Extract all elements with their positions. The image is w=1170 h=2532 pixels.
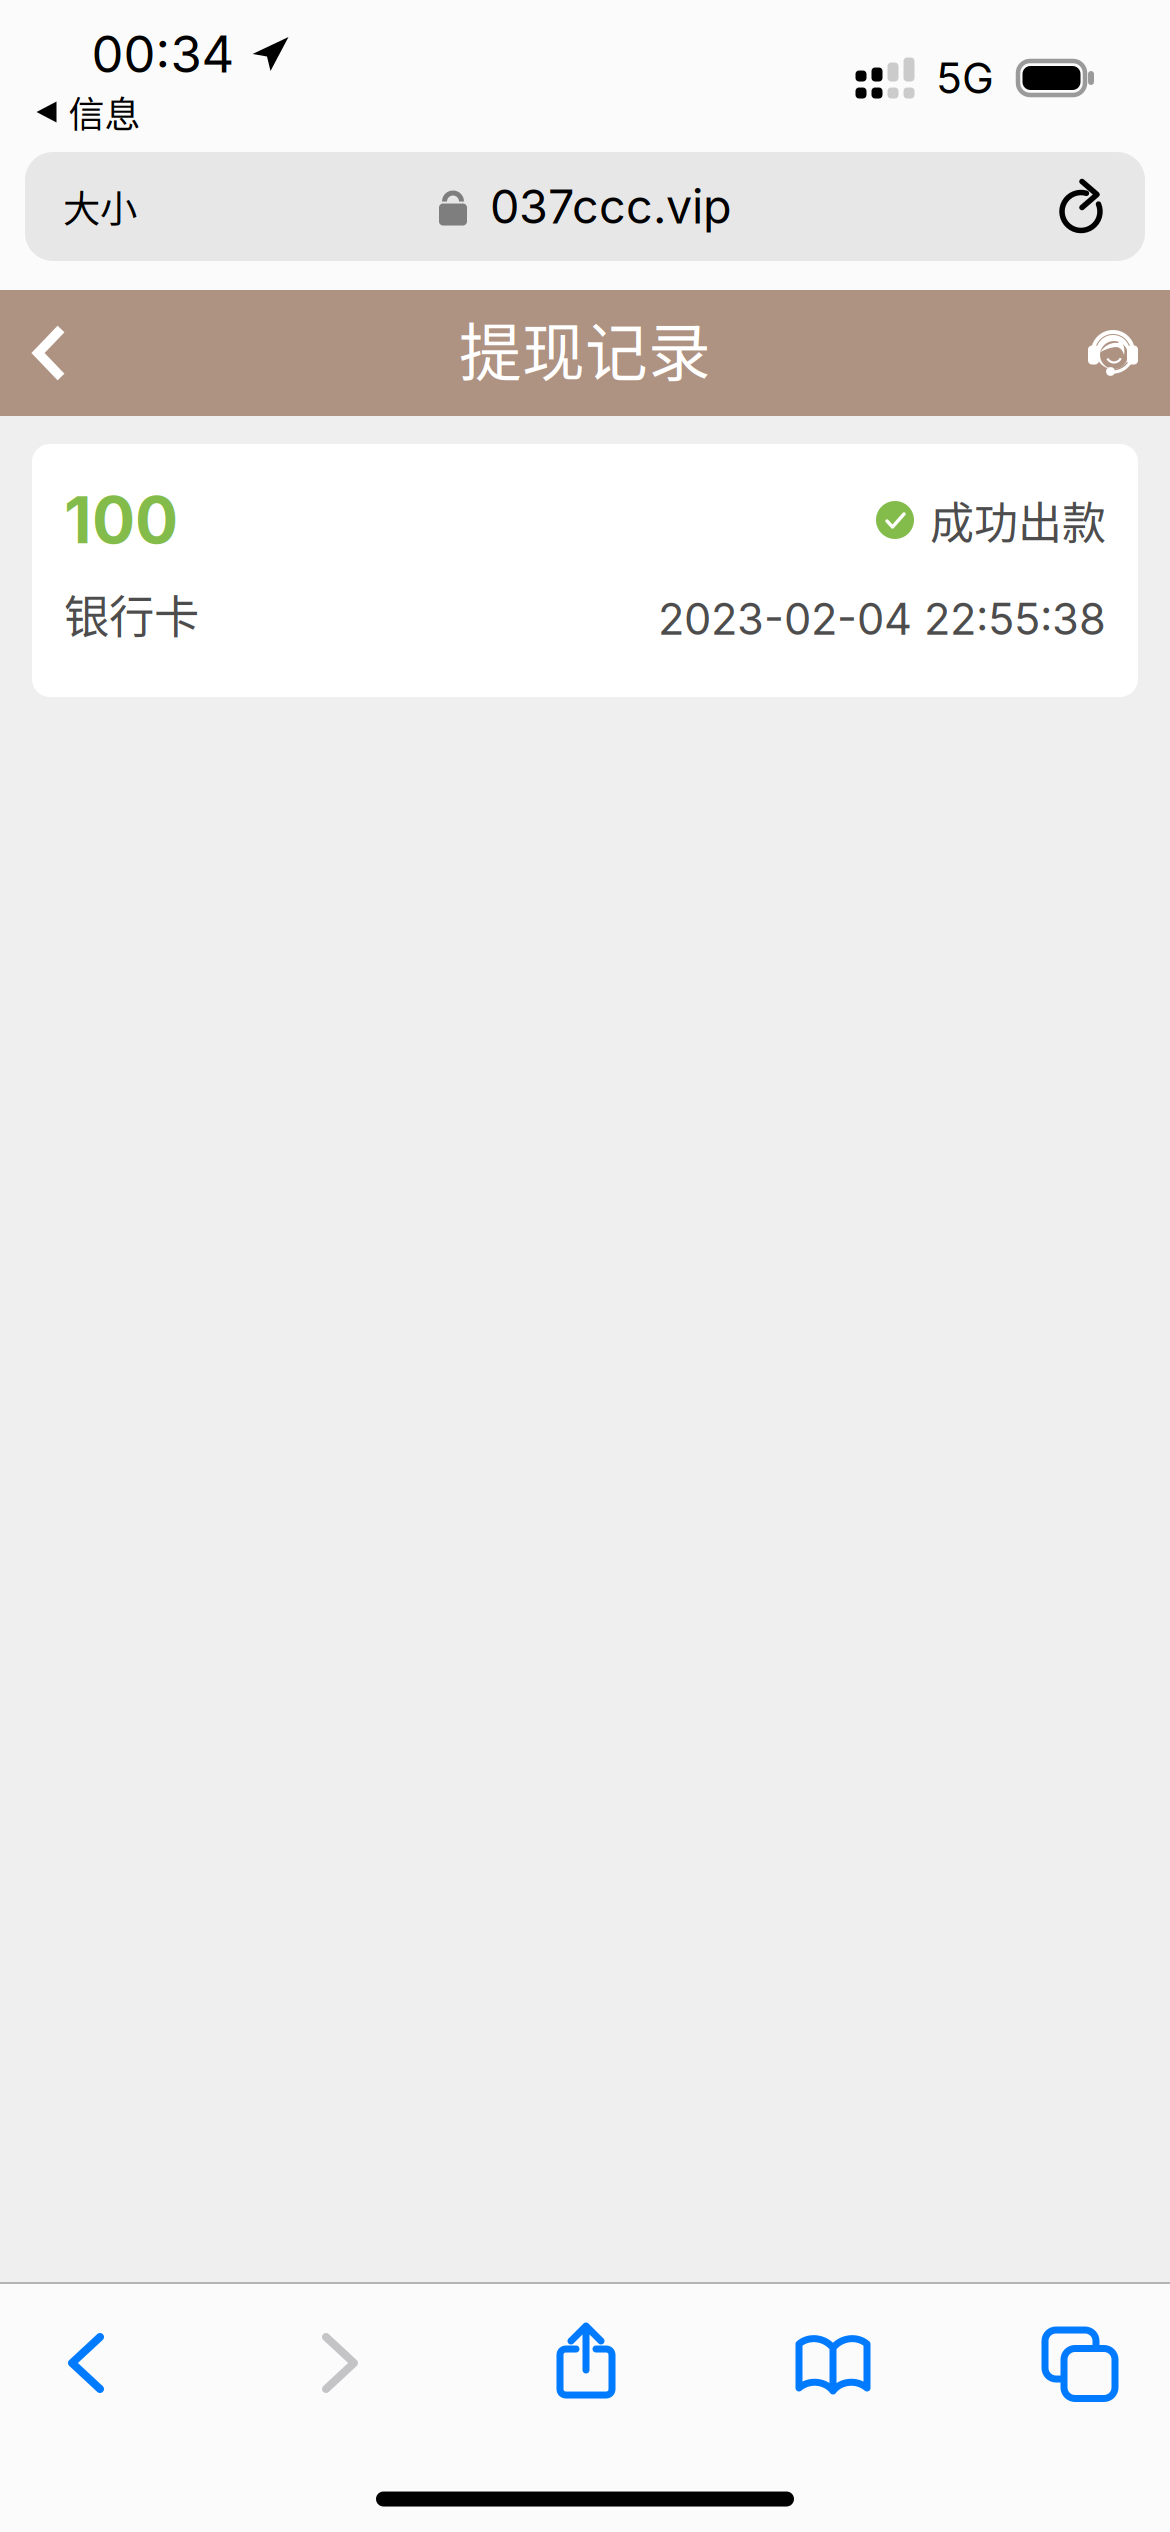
button[interactable]: Back <box>0 290 106 416</box>
staticText: 2023-02-04 22:55:38 <box>658 593 1106 645</box>
staticText: 信息 <box>68 86 140 138</box>
button[interactable]: Share <box>486 2285 686 2435</box>
button[interactable]: Forward <box>240 2288 440 2438</box>
staticText: 00:34 <box>91 23 234 85</box>
button[interactable]: 信息 <box>13 88 162 136</box>
staticText: 银行卡 <box>64 581 199 647</box>
staticText: 100 <box>64 481 178 559</box>
staticText: 大小 <box>63 179 137 234</box>
button[interactable]: Back <box>0 2288 186 2438</box>
staticText: 提现记录 <box>459 303 711 393</box>
button[interactable]: 大小 <box>25 152 165 261</box>
button[interactable]: Reload <box>1035 152 1145 261</box>
staticText: 037ccc.vip <box>490 178 732 235</box>
button[interactable]: Bookmarks <box>733 2289 933 2439</box>
staticText: 成功出款 <box>930 488 1106 552</box>
button[interactable]: Customer service <box>1053 290 1170 416</box>
staticText: 5G <box>936 52 994 104</box>
button[interactable]: Tabs <box>980 2289 1170 2439</box>
